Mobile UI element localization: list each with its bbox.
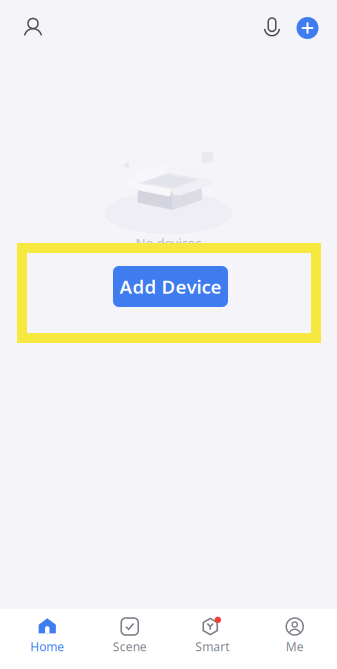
button[interactable]: Profile [14, 4, 52, 52]
button[interactable]: Voice search [255, 4, 289, 52]
staticText: No devices [135, 234, 201, 252]
button[interactable]: Me [253, 608, 336, 669]
button[interactable]: Add device [289, 4, 326, 52]
button[interactable]: Home [6, 608, 88, 669]
button[interactable]: Smart [171, 608, 253, 669]
staticText: Smart [195, 638, 229, 654]
button[interactable]: Add Device [113, 266, 228, 307]
staticText: Me [286, 638, 304, 654]
staticText: Add Device [119, 274, 221, 299]
staticText: Scene [113, 638, 147, 654]
staticText: Home [30, 638, 64, 654]
button[interactable]: Scene [88, 608, 171, 669]
